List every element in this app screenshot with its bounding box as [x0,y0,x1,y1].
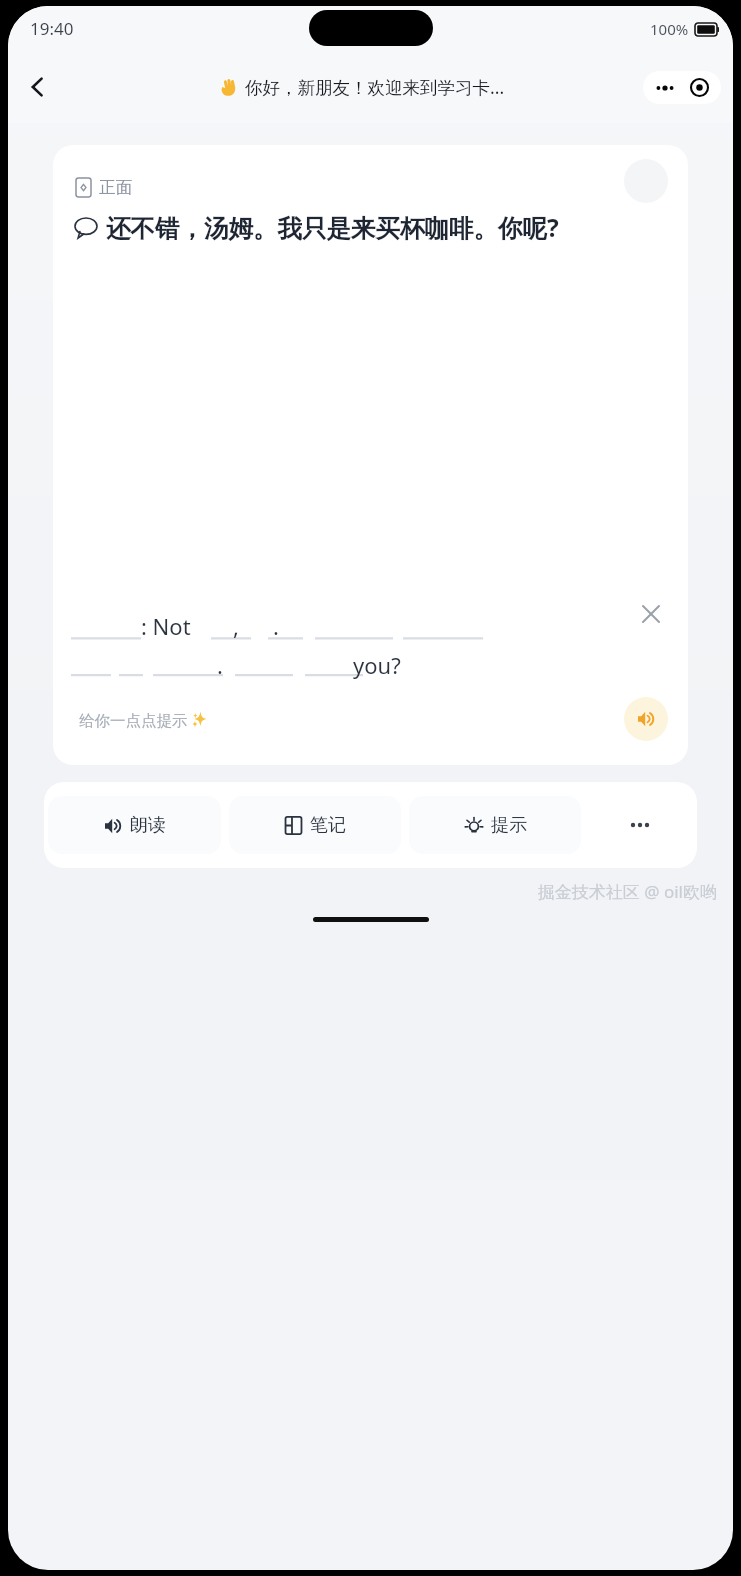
button[interactable]: Close hint [632,595,670,633]
button[interactable]: Back [16,65,60,109]
staticText: . [273,611,279,641]
button[interactable]: Card action [624,159,668,203]
staticText: 给你一点点提示 [79,709,192,730]
button[interactable]: : Not [63,587,678,749]
staticText: 朗读 [130,814,166,837]
button[interactable]: 朗读 [48,796,221,854]
button[interactable]: More options [643,71,721,104]
staticText: 还不错，汤姆。我只是来买杯咖啡。你呢? [106,211,559,244]
staticText: : Not [141,611,191,641]
button[interactable]: 笔记 [229,796,401,854]
staticText: 掘金技术社区 @ oil欧哟 [537,880,717,903]
button[interactable]: Play audio [624,697,668,741]
staticText: 提示 [491,814,527,837]
staticText: 笔记 [310,814,346,837]
staticText: 正面 [99,177,132,198]
staticText: , [233,611,239,641]
button[interactable]: More [585,782,697,868]
staticText: 你好，新朋友！欢迎来到学习卡... [245,75,505,99]
button[interactable]: Card action [53,145,688,765]
staticText: you? [353,650,401,680]
staticText: 100% [650,19,689,39]
button[interactable]: 提示 [409,796,581,854]
staticText: . [217,650,223,680]
staticText: 19:40 [30,17,74,40]
